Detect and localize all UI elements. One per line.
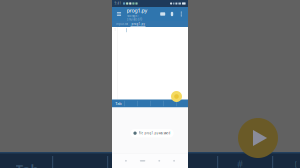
button[interactable]: More options	[179, 7, 184, 21]
button[interactable]: Menu	[112, 7, 126, 21]
button[interactable]: Run	[171, 91, 182, 102]
button[interactable]: Save	[171, 12, 173, 16]
button[interactable]: Play	[238, 118, 278, 158]
staticText: /storage/emulated/0	[126, 14, 142, 21]
button[interactable]: prog1.py	[130, 21, 146, 27]
staticText: 1	[114, 28, 116, 32]
staticText: input.txt	[116, 22, 128, 26]
button[interactable]: Open file	[160, 12, 165, 16]
staticText: 9:41	[114, 2, 121, 5]
button[interactable]: input.txt	[114, 21, 130, 27]
staticText: #	[237, 158, 243, 168]
staticText: (	[294, 158, 297, 168]
staticText: File prog1.py was saved	[139, 131, 171, 135]
staticText: Tab	[15, 160, 38, 168]
staticText: Tab	[115, 101, 121, 106]
staticText: prog1.py	[131, 22, 144, 26]
staticText: prog1.py	[126, 7, 147, 14]
